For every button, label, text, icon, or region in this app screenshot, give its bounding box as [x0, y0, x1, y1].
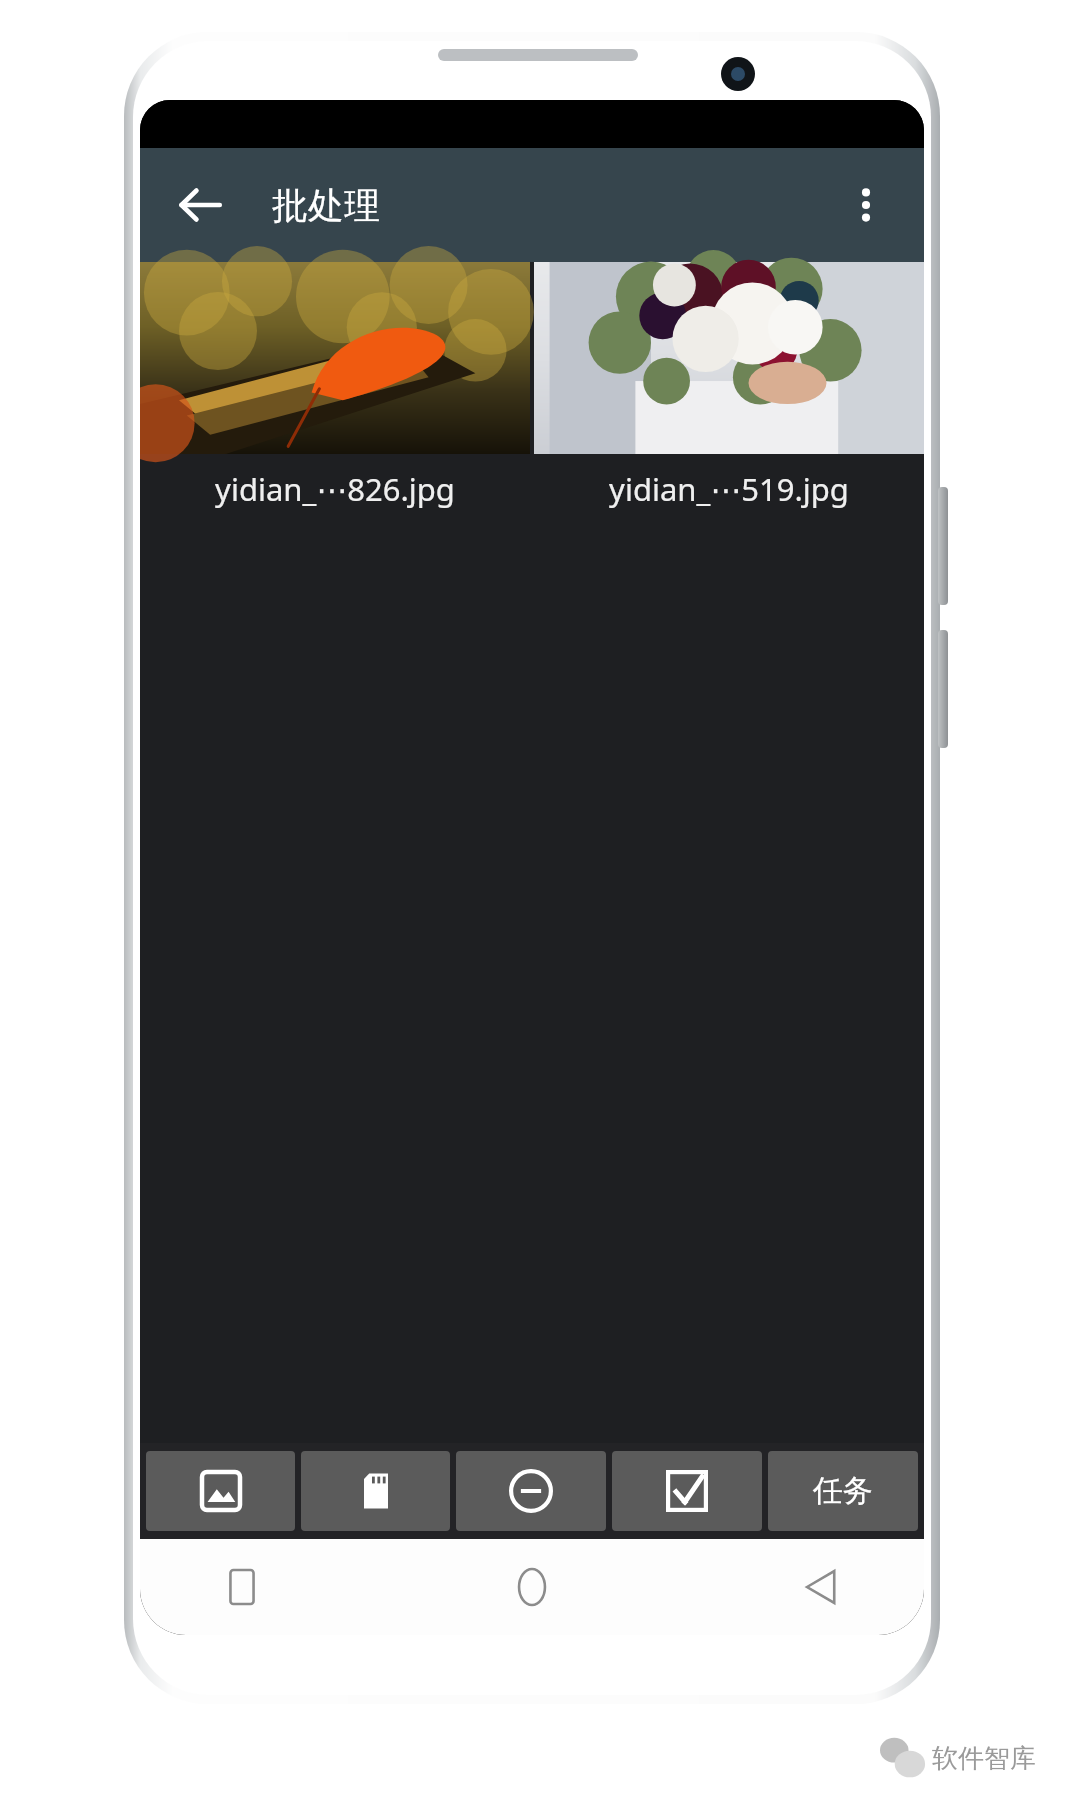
button[interactable]: Remove	[456, 1451, 606, 1531]
button[interactable]	[140, 262, 530, 454]
button[interactable]: Home	[500, 1555, 564, 1619]
button[interactable]: Back	[164, 169, 236, 241]
button[interactable]	[534, 262, 924, 454]
button[interactable]: SD card	[301, 1451, 450, 1531]
staticText: 任务	[813, 1472, 873, 1510]
button[interactable]: 任务	[768, 1451, 918, 1531]
staticText: 批处理	[272, 183, 380, 228]
staticText: 软件智库	[932, 1742, 1036, 1775]
button[interactable]: Select all	[612, 1451, 762, 1531]
staticText: yidian_⋯826.jpg	[215, 468, 455, 510]
button[interactable]: Back	[790, 1555, 854, 1619]
button[interactable]: Recents	[210, 1555, 274, 1619]
button[interactable]: Gallery	[146, 1451, 295, 1531]
staticText: yidian_⋯519.jpg	[609, 468, 849, 510]
button[interactable]: More options	[830, 169, 902, 241]
